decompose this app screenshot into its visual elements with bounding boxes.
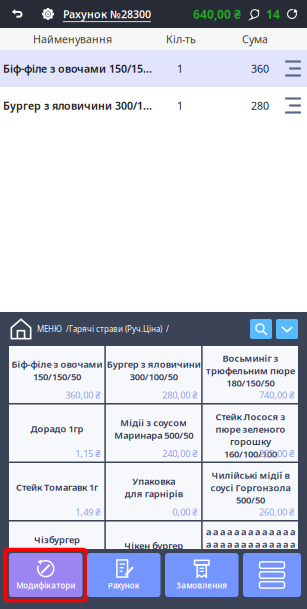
staticText: Біф-філе з овочами 150/15... — [3, 61, 152, 76]
button[interactable]: Search — [250, 319, 272, 339]
button[interactable]: Expand — [272, 319, 298, 339]
button[interactable] — [243, 553, 301, 597]
staticText: Біф-філе з овочами 150/150/50 — [11, 358, 102, 383]
button[interactable]: Рахунок №28300 — [61, 0, 153, 28]
staticText: Чікен бургер — [124, 539, 183, 552]
staticText: 1 — [177, 98, 183, 113]
button[interactable]: Чікен бургер — [106, 521, 201, 578]
staticText: 0,00 ₴ — [172, 506, 197, 518]
staticText: 1,49 ₴ — [75, 506, 100, 518]
button[interactable]: Undo — [4, 0, 31, 28]
staticText: Рахунок №28300 — [63, 7, 151, 21]
staticText: Чилійські мідії в соусі Горгонзола 500/5… — [210, 469, 290, 506]
button[interactable]: Settings — [31, 0, 61, 28]
staticText: 740,00 ₴ — [259, 389, 294, 401]
staticText: 1 — [177, 61, 183, 76]
button[interactable]: Дорадо 1гр — [9, 404, 104, 461]
staticText: 14 — [266, 6, 280, 22]
staticText: Бургер з яловичини 300/100/50 — [106, 358, 200, 383]
staticText: 260,00 ₴ — [259, 506, 294, 518]
staticText: Рахунок — [108, 580, 140, 591]
staticText: 360,00 ₴ — [65, 389, 100, 401]
staticText: 360 — [251, 61, 269, 76]
button[interactable]: МЕНЮ /Гарячі страви (Руч.Ціна) / — [33, 324, 169, 334]
button[interactable]: Мідіі з соусом Маринара 500/50 — [106, 404, 201, 461]
staticText: 280,00 ₴ — [162, 389, 197, 401]
staticText: Замовлення — [176, 580, 227, 591]
staticText: Стейк Томагавк 1г — [16, 481, 98, 493]
button[interactable]: Home — [9, 317, 33, 341]
staticText: Упаковка для гарнірів — [124, 475, 182, 500]
staticText: Бургер з яловичини 300/1... — [3, 98, 152, 113]
button[interactable]: Бургер з яловичини 300/1... — [0, 87, 307, 124]
button[interactable]: Упаковка для гарнірів — [106, 463, 201, 520]
button[interactable]: Модифікатори — [9, 553, 82, 597]
staticText: МЕНЮ /Гарячі страви (Руч.Ціна) / — [37, 324, 169, 334]
staticText: 1,15 ₴ — [75, 447, 100, 459]
button[interactable]: Восьминіг з трюфельним пюре 180/150/50 — [203, 346, 298, 403]
staticText: Найменування — [33, 32, 112, 46]
staticText: Дорадо 1гр — [30, 422, 83, 435]
button[interactable]: Біф-філе з овочами 150/150/50 — [9, 346, 104, 403]
staticText: Модифікатори — [16, 580, 75, 591]
staticText: Чізбургер 350/100/50 — [33, 533, 81, 558]
staticText: Восьминіг з трюфельним пюре 180/150/50 — [206, 352, 295, 389]
button[interactable]: Comments — [244, 0, 266, 28]
button[interactable]: Рахунок — [87, 553, 160, 597]
button[interactable]: а а а а а а а а а а а а а а а а а а а а … — [203, 521, 298, 578]
button[interactable]: Бургер з яловичини 300/100/50 — [106, 346, 201, 403]
button[interactable]: Біф-філе з овочами 150/15... — [0, 50, 307, 87]
button[interactable]: Стейк Лосося з пюре зеленого горошку 160… — [203, 404, 298, 461]
staticText: Кіл-ть — [166, 32, 196, 46]
staticText: а а а а а а а а а а а а а а а а а а а а … — [206, 525, 295, 563]
staticText: Мідіі з соусом Маринара 500/50 — [114, 416, 193, 441]
staticText: Сума — [242, 32, 268, 46]
button[interactable]: Чізбургер 350/100/50 — [9, 521, 104, 578]
staticText: 240,00 ₴ — [162, 447, 197, 459]
staticText: 280 — [251, 98, 269, 113]
button[interactable]: Refresh — [280, 0, 304, 28]
staticText: 295,00 ₴ — [259, 447, 294, 459]
button[interactable]: Замовлення — [165, 553, 238, 597]
button[interactable]: Стейк Томагавк 1г — [9, 463, 104, 520]
staticText: 640,00 ₴ — [193, 6, 241, 22]
button[interactable]: Чилійські мідії в соусі Горгонзола 500/5… — [203, 463, 298, 520]
staticText: Стейк Лосося з пюре зеленого горошку 160… — [215, 410, 285, 460]
